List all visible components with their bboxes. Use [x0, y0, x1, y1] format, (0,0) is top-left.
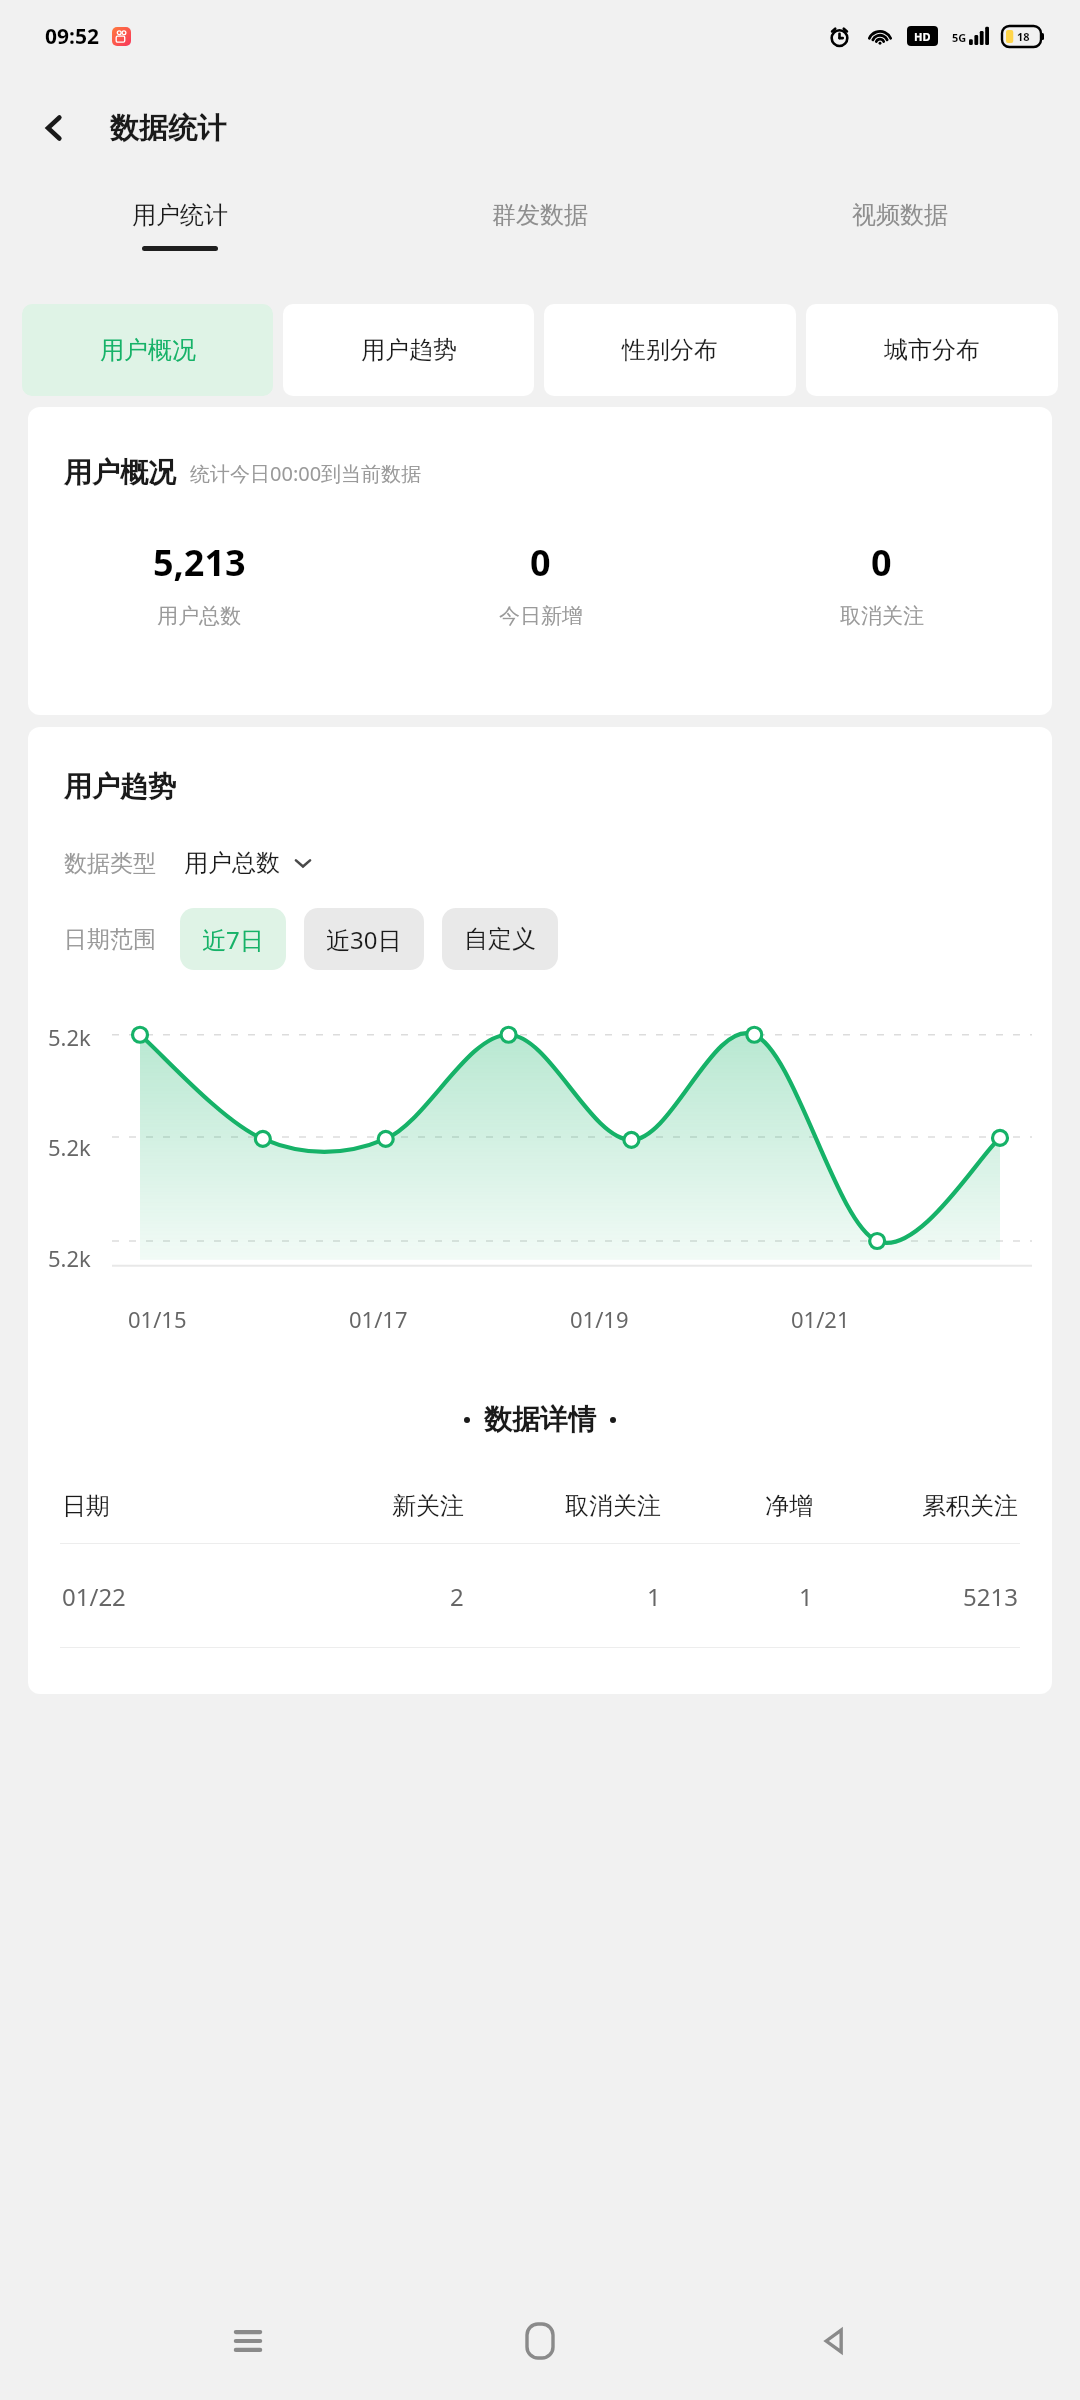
staticText: 日期 — [62, 1491, 110, 1521]
staticText: 数据详情 — [484, 1402, 596, 1437]
button[interactable]: 用户统计 — [0, 184, 360, 294]
staticText: 累积关注 — [922, 1491, 1018, 1521]
staticText: 5G — [952, 30, 967, 45]
staticText: 1 — [799, 1580, 813, 1613]
button[interactable]: 自定义 — [442, 908, 558, 970]
staticText: 01/15 — [128, 1304, 187, 1334]
staticText: 0 — [871, 538, 892, 587]
staticText: 视频数据 — [852, 200, 948, 230]
button[interactable]: 近30日 — [304, 908, 424, 970]
staticText: 取消关注 — [840, 603, 924, 629]
staticText: 自定义 — [464, 924, 536, 954]
staticText: 取消关注 — [565, 1491, 661, 1521]
button[interactable]: 性别分布 — [544, 304, 796, 396]
button[interactable]: 用户总数 — [184, 848, 314, 878]
button[interactable]: Back — [26, 100, 82, 156]
staticText: 近30日 — [326, 923, 402, 956]
staticText: 用户总数 — [157, 603, 241, 629]
staticText: 数据统计 — [110, 110, 226, 147]
button[interactable]: 用户趋势 — [283, 304, 534, 396]
staticText: 城市分布 — [884, 335, 980, 365]
staticText: 5.2k — [48, 1243, 91, 1273]
staticText: 用户概况 — [64, 455, 176, 490]
staticText: 用户趋势 — [361, 335, 457, 365]
staticText: 群发数据 — [492, 200, 588, 230]
staticText: 统计今日00:00到当前数据 — [190, 460, 422, 487]
staticText: 今日新增 — [499, 603, 583, 629]
staticText: 用户趋势 — [64, 769, 176, 804]
staticText: 01/17 — [349, 1304, 408, 1334]
button[interactable]: Home — [495, 2296, 585, 2386]
staticText: 5.2k — [48, 1022, 91, 1052]
staticText: 01/19 — [570, 1304, 629, 1334]
staticText: 用户总数 — [184, 848, 280, 878]
staticText: 日期范围 — [64, 925, 156, 954]
staticText: 净增 — [765, 1491, 813, 1521]
button[interactable]: 城市分布 — [806, 304, 1058, 396]
staticText: 用户统计 — [132, 200, 228, 230]
button[interactable]: Recents — [203, 2296, 293, 2386]
staticText: 01/21 — [791, 1304, 850, 1334]
button[interactable]: 近7日 — [180, 908, 286, 970]
staticText: 数据类型 — [64, 849, 156, 878]
staticText: 近7日 — [202, 923, 264, 956]
staticText: 新关注 — [392, 1491, 464, 1521]
staticText: 5213 — [963, 1580, 1018, 1613]
button[interactable]: 用户概况 — [22, 304, 273, 396]
staticText: 用户概况 — [100, 335, 196, 365]
staticText: HD — [914, 29, 931, 44]
staticText: 01/22 — [62, 1580, 126, 1613]
staticText: 2 — [450, 1580, 464, 1613]
staticText: 18 — [1017, 29, 1030, 44]
button[interactable]: 群发数据 — [360, 184, 720, 294]
staticText: 性别分布 — [622, 335, 718, 365]
staticText: 5.2k — [48, 1132, 91, 1162]
button[interactable]: 视频数据 — [720, 184, 1080, 294]
staticText: 0 — [530, 538, 551, 587]
button[interactable]: Back — [788, 2296, 878, 2386]
staticText: 5,213 — [153, 538, 246, 587]
staticText: 09:52 — [45, 22, 99, 51]
staticText: 1 — [647, 1580, 661, 1613]
